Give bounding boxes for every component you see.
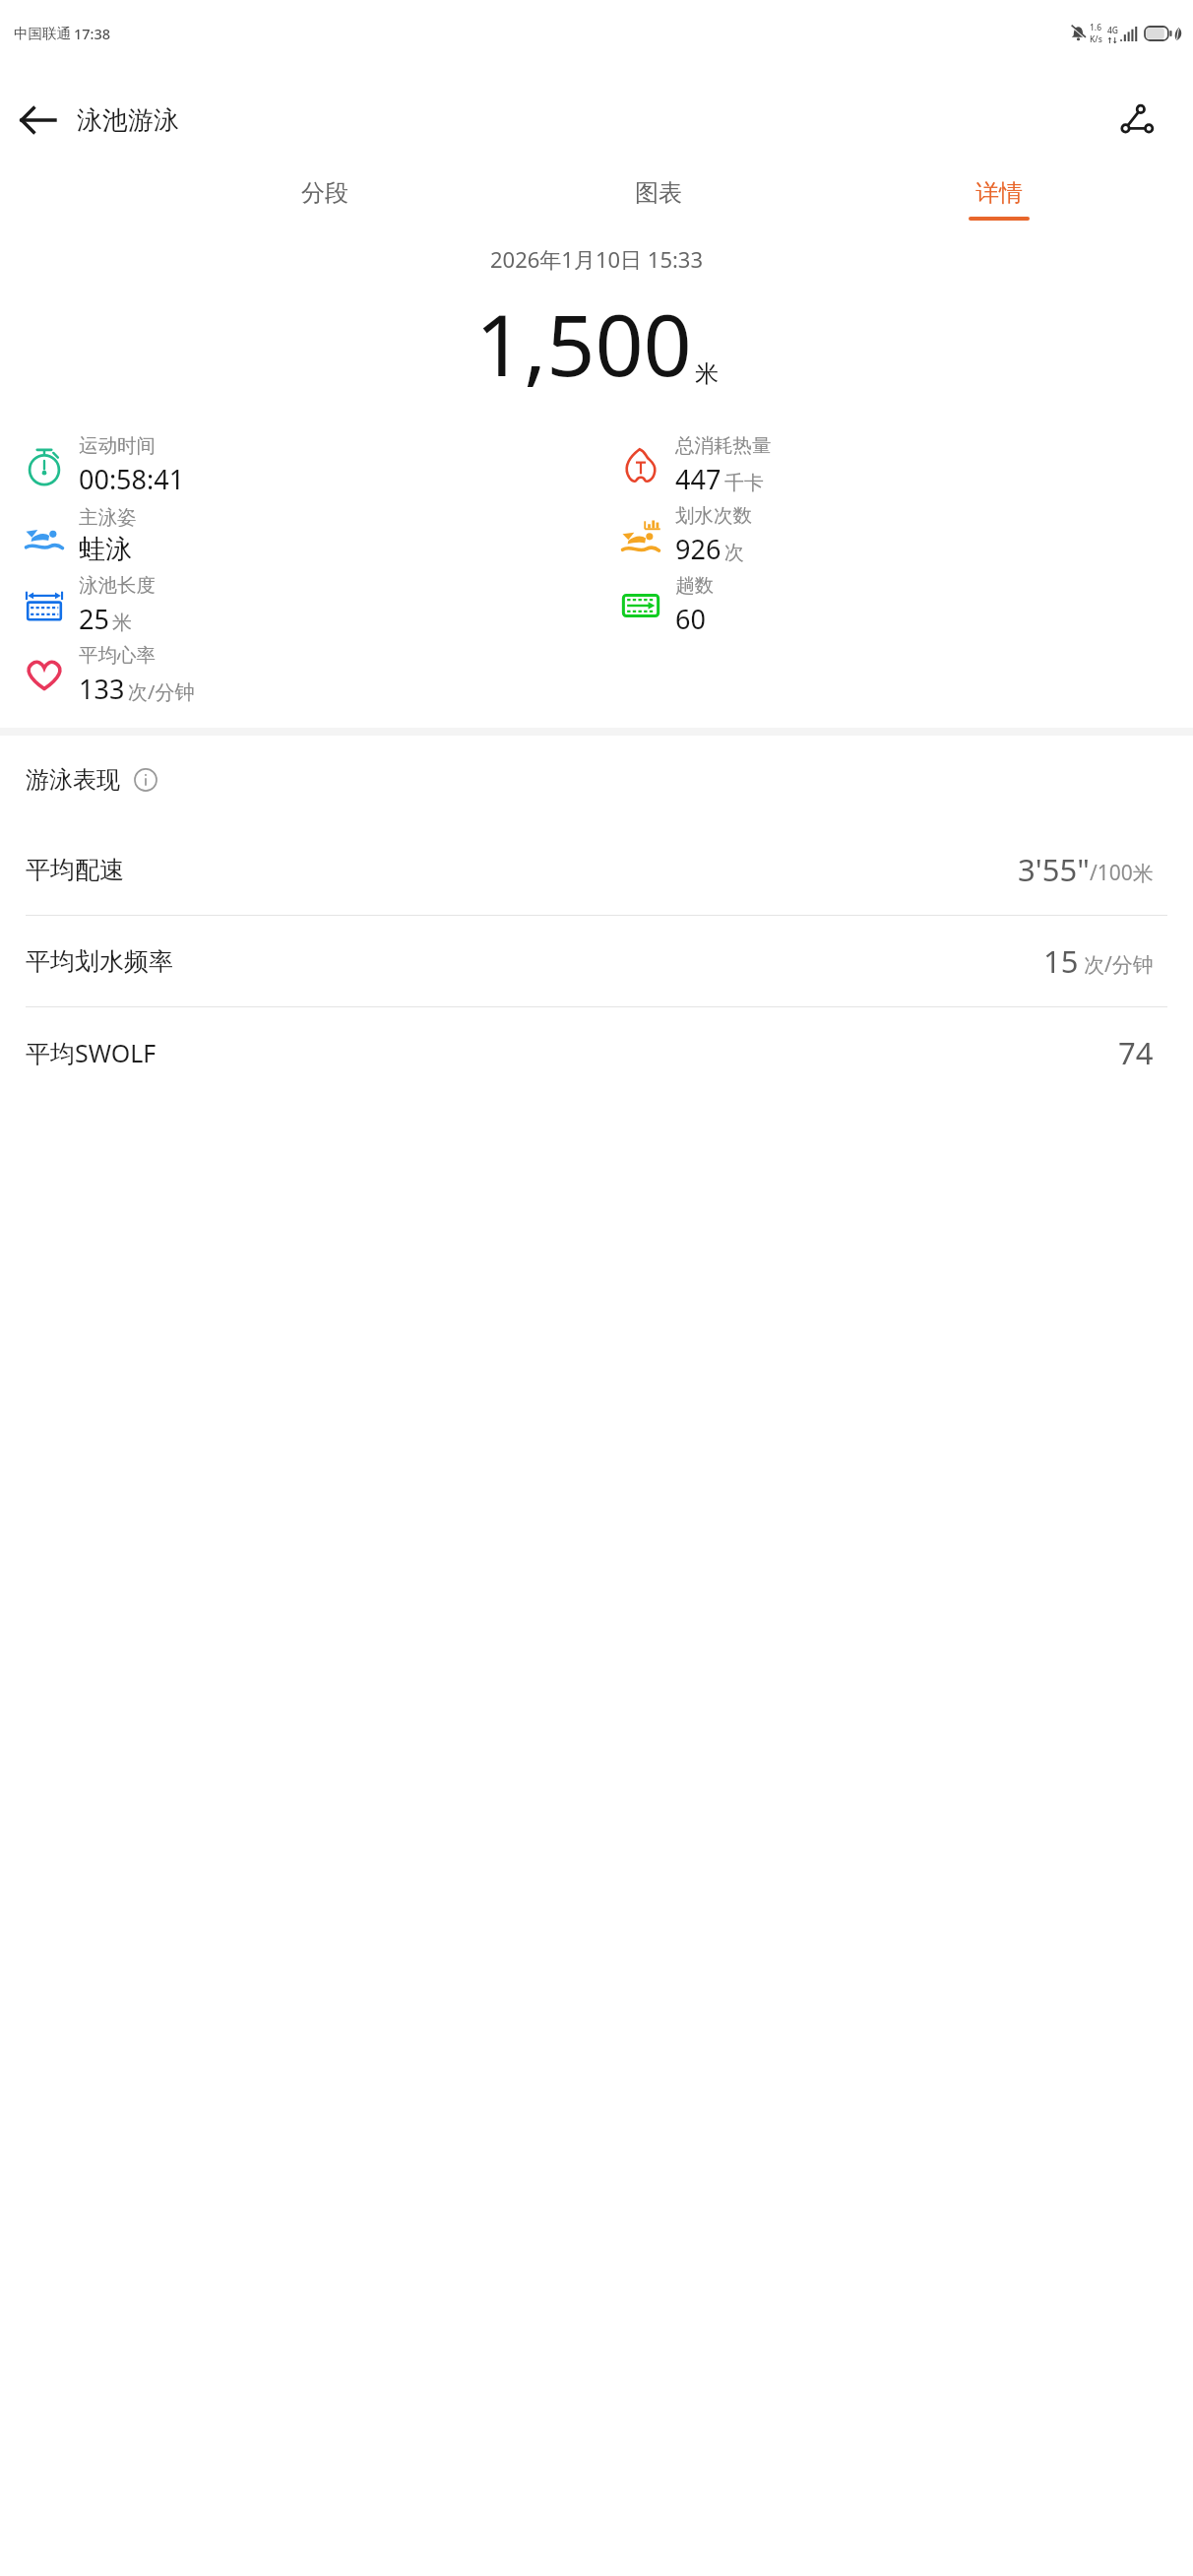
staticText: 1,500 xyxy=(475,286,692,401)
staticText: 千卡 xyxy=(724,471,764,495)
staticText: 60 xyxy=(675,601,706,637)
staticText: 次/分钟 xyxy=(128,678,195,705)
staticText: 次/分钟 xyxy=(1084,950,1154,979)
staticText: 泳池长度 xyxy=(79,573,156,598)
staticText: 2026年1月10日 15:33 xyxy=(490,244,704,274)
button[interactable]: 平均配速 xyxy=(0,824,1193,915)
staticText: 3'55" xyxy=(1018,849,1090,890)
staticText: 平均划水频率 xyxy=(26,946,173,977)
staticText: 00:58:41 xyxy=(79,461,185,497)
staticText: 运动时间 xyxy=(79,433,156,458)
staticText: 447 xyxy=(675,461,722,497)
button[interactable]: 平均心率 xyxy=(0,640,596,710)
staticText: 分段 xyxy=(301,178,348,208)
staticText: 趟数 xyxy=(675,573,714,598)
staticText: 15 xyxy=(1043,940,1079,982)
staticText: 平均SWOLF xyxy=(26,1036,157,1069)
staticText: 926 xyxy=(675,531,722,567)
staticText: 米 xyxy=(112,611,132,635)
button[interactable]: 划水次数 xyxy=(596,500,1193,570)
staticText: /100米 xyxy=(1090,859,1154,887)
staticText: 总消耗热量 xyxy=(675,433,772,458)
button[interactable]: Info xyxy=(129,763,162,797)
staticText: 主泳姿 xyxy=(79,505,137,530)
staticText: 4G xyxy=(1107,25,1119,36)
staticText: 74 xyxy=(1118,1032,1154,1073)
button[interactable]: 详情 xyxy=(963,174,1036,225)
staticText: 泳池游泳 xyxy=(77,104,179,137)
staticText: 平均配速 xyxy=(26,855,124,885)
staticText: 蛙泳 xyxy=(79,533,132,566)
button[interactable]: 总消耗热量 xyxy=(596,430,1193,500)
button[interactable]: Back xyxy=(0,82,77,159)
staticText: 米 xyxy=(695,359,719,389)
staticText: 详情 xyxy=(975,178,1023,208)
button[interactable]: 图表 xyxy=(629,174,688,225)
button[interactable]: 平均SWOLF xyxy=(0,1007,1193,1098)
staticText: 中国联通 xyxy=(14,25,71,42)
button[interactable]: Share xyxy=(1102,86,1171,155)
button[interactable]: 泳池长度 xyxy=(0,570,596,640)
button[interactable]: 趟数 xyxy=(596,570,1193,640)
staticText: 游泳表现 xyxy=(26,765,120,795)
staticText: 133 xyxy=(79,671,125,707)
button[interactable]: 运动时间 xyxy=(0,430,596,500)
staticText: 划水次数 xyxy=(675,503,752,528)
button[interactable]: 平均划水频率 xyxy=(0,916,1193,1006)
staticText: K/s xyxy=(1090,33,1102,45)
staticText: 17:38 xyxy=(74,24,111,43)
staticText: 1.6 xyxy=(1090,22,1102,33)
staticText: 图表 xyxy=(635,178,682,208)
button[interactable]: 分段 xyxy=(295,174,354,225)
staticText: 25 xyxy=(79,601,109,637)
staticText: 次 xyxy=(724,541,744,565)
staticText: 平均心率 xyxy=(79,643,156,668)
button[interactable]: 主泳姿 xyxy=(0,500,596,570)
